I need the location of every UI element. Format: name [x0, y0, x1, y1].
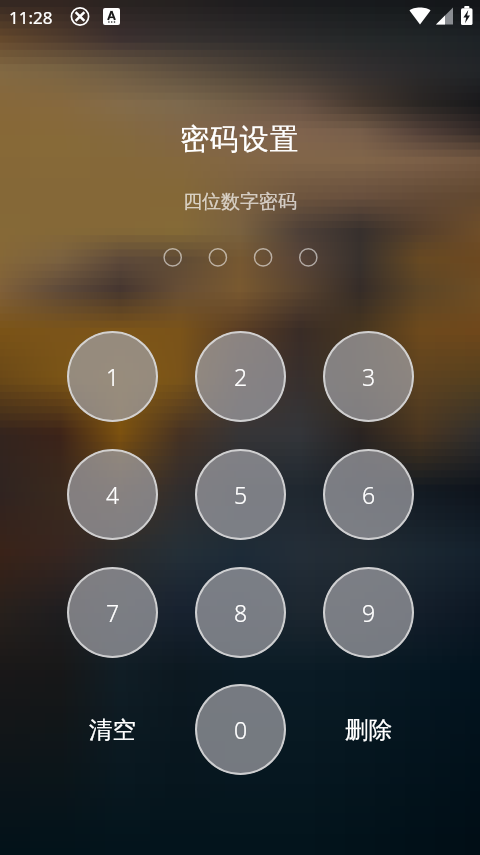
button[interactable]: 删除	[323, 708, 414, 752]
staticText: 删除	[345, 715, 392, 745]
button[interactable]: 清空	[67, 708, 158, 752]
staticText: 4	[106, 479, 120, 510]
staticText: 清空	[89, 715, 136, 745]
button[interactable]: 6	[323, 449, 414, 540]
staticText: 7	[106, 597, 120, 628]
button[interactable]: 4	[67, 449, 158, 540]
button[interactable]: 3	[323, 331, 414, 422]
staticText: 0	[234, 714, 248, 745]
staticText: 11:28	[9, 6, 53, 29]
staticText: 9	[362, 597, 376, 628]
staticText: 6	[362, 479, 376, 510]
button[interactable]: 7	[67, 567, 158, 658]
staticText: 四位数字密码	[183, 190, 297, 214]
button[interactable]: 1	[67, 331, 158, 422]
button[interactable]: 9	[323, 567, 414, 658]
staticText: 3	[362, 361, 376, 392]
staticText: 1	[106, 361, 120, 392]
staticText: 5	[234, 479, 248, 510]
button[interactable]: 5	[195, 449, 286, 540]
button[interactable]: 0	[195, 684, 286, 775]
staticText: 密码设置	[180, 121, 300, 158]
staticText: 8	[234, 597, 248, 628]
button[interactable]: 2	[195, 331, 286, 422]
button[interactable]: 8	[195, 567, 286, 658]
staticText: 2	[234, 361, 248, 392]
